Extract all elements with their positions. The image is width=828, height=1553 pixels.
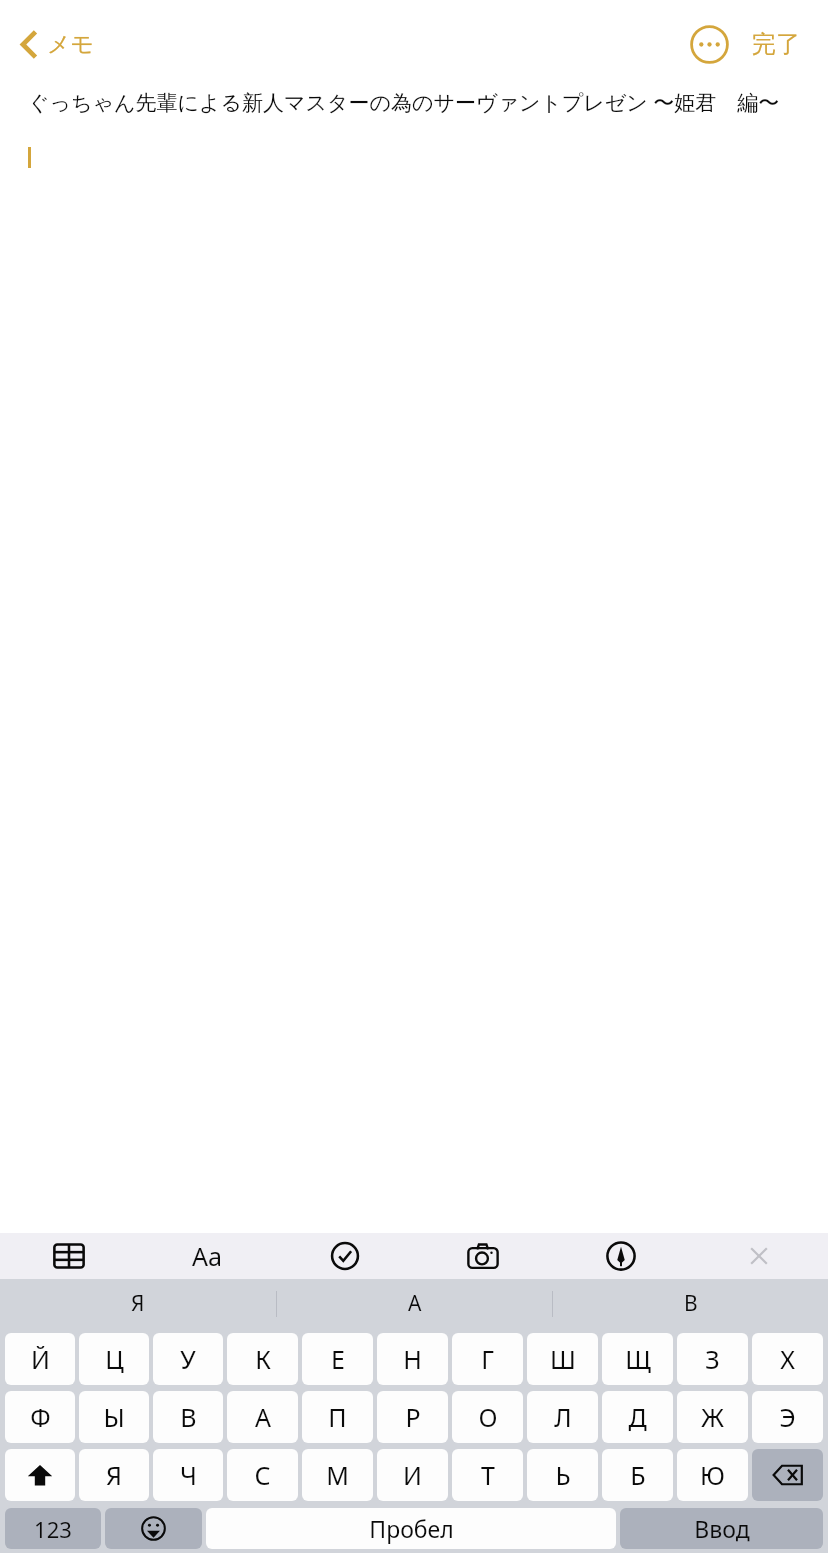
button[interactable]: П (302, 1391, 373, 1443)
button[interactable]: Hide keyboard (690, 1233, 828, 1279)
staticText: В (684, 1289, 698, 1318)
staticText: А (408, 1289, 422, 1318)
staticText: Й (31, 1342, 50, 1376)
button[interactable]: З (677, 1333, 748, 1385)
button[interactable]: Пробел (206, 1508, 616, 1549)
button[interactable]: Н (377, 1333, 448, 1385)
button[interactable]: Ь (527, 1449, 598, 1501)
staticText: Э (779, 1400, 796, 1434)
staticText: Aa (192, 1239, 223, 1273)
staticText: 完了 (752, 29, 800, 59)
staticText: У (180, 1342, 196, 1376)
staticText: Ь (555, 1458, 571, 1492)
staticText: З (705, 1342, 720, 1376)
button[interactable]: Ввод (620, 1508, 823, 1549)
staticText: Щ (625, 1342, 651, 1376)
staticText: С (254, 1458, 271, 1492)
staticText: Б (630, 1458, 646, 1492)
button[interactable]: В (553, 1279, 828, 1328)
staticText: Ввод (694, 1513, 750, 1544)
staticText: Ц (105, 1342, 124, 1376)
button[interactable]: Ч (153, 1449, 223, 1501)
button[interactable]: Л (527, 1391, 598, 1443)
staticText: Г (481, 1342, 494, 1376)
button[interactable]: Camera (414, 1233, 552, 1279)
button[interactable]: Р (377, 1391, 448, 1443)
staticText: Н (403, 1342, 422, 1376)
button[interactable]: О (452, 1391, 523, 1443)
button[interactable]: Ю (677, 1449, 748, 1501)
button[interactable]: Б (602, 1449, 673, 1501)
button[interactable]: More options (687, 22, 731, 66)
button[interactable]: Я (0, 1279, 276, 1328)
button[interactable]: А (227, 1391, 298, 1443)
button[interactable]: Markup (552, 1233, 690, 1279)
staticText: Ю (700, 1458, 725, 1492)
staticText: 123 (34, 1514, 72, 1544)
button[interactable]: Ш (527, 1333, 598, 1385)
staticText: Ч (180, 1458, 197, 1492)
staticText: О (478, 1400, 498, 1434)
staticText: И (403, 1458, 422, 1492)
staticText: Ы (103, 1400, 125, 1434)
staticText: П (328, 1400, 347, 1434)
button[interactable]: И (377, 1449, 448, 1501)
staticText: Т (481, 1458, 495, 1492)
button[interactable]: Emoji (105, 1508, 202, 1549)
staticText: К (255, 1342, 271, 1376)
staticText: М (326, 1458, 349, 1492)
button[interactable]: Ы (79, 1391, 149, 1443)
button[interactable]: Е (302, 1333, 373, 1385)
button[interactable]: Д (602, 1391, 673, 1443)
button[interactable]: Щ (602, 1333, 673, 1385)
button[interactable]: С (227, 1449, 298, 1501)
button[interactable]: А (277, 1279, 552, 1328)
button[interactable]: Shift (5, 1449, 75, 1501)
button[interactable]: У (153, 1333, 223, 1385)
button[interactable]: Ц (79, 1333, 149, 1385)
button[interactable]: メモ (14, 21, 101, 68)
staticText: Ф (30, 1400, 51, 1434)
staticText: Ж (701, 1400, 724, 1434)
button[interactable]: В (153, 1391, 223, 1443)
button[interactable]: М (302, 1449, 373, 1501)
staticText: Пробел (369, 1513, 454, 1544)
staticText: Р (405, 1400, 421, 1434)
staticText: Д (628, 1400, 647, 1434)
button[interactable]: Backspace (752, 1449, 823, 1501)
button[interactable]: 123 (5, 1508, 101, 1549)
button[interactable]: Table (0, 1233, 138, 1279)
button[interactable]: Text format (138, 1233, 276, 1279)
button[interactable]: Й (5, 1333, 75, 1385)
staticText: Я (131, 1289, 145, 1318)
button[interactable]: Я (79, 1449, 149, 1501)
button[interactable]: 完了 (748, 21, 804, 67)
staticText: Л (554, 1400, 572, 1434)
button[interactable]: Г (452, 1333, 523, 1385)
button[interactable]: Т (452, 1449, 523, 1501)
staticText: В (180, 1400, 197, 1434)
staticText: ぐっちゃん先輩による新人マスターの為のサーヴァントプレゼン 〜姫君 編〜 (28, 88, 780, 117)
staticText: А (255, 1400, 271, 1434)
staticText: Х (780, 1342, 795, 1376)
button[interactable]: К (227, 1333, 298, 1385)
staticText: Е (331, 1342, 345, 1376)
button[interactable]: Ф (5, 1391, 75, 1443)
button[interactable]: Э (752, 1391, 823, 1443)
staticText: メモ (47, 30, 95, 59)
staticText: Ш (550, 1342, 576, 1376)
button[interactable]: Ж (677, 1391, 748, 1443)
staticText: Я (106, 1458, 122, 1492)
button[interactable]: Х (752, 1333, 823, 1385)
button[interactable]: Checklist (276, 1233, 414, 1279)
